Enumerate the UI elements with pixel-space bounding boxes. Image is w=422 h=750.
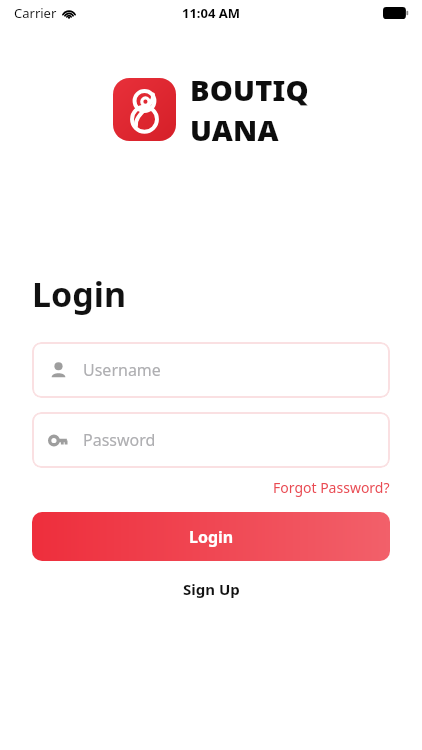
staticText: Login xyxy=(189,526,234,548)
button[interactable]: Forgot Password? xyxy=(271,476,392,499)
staticText: UANA xyxy=(190,110,279,149)
staticText: BOUTIQ xyxy=(190,70,309,109)
staticText: Forgot Password? xyxy=(273,478,390,497)
staticText: Password xyxy=(83,429,156,451)
staticText: Carrier xyxy=(14,4,57,22)
staticText: Login xyxy=(32,271,127,317)
button[interactable]: Username xyxy=(32,342,390,398)
staticText: 11:04 AM xyxy=(182,4,241,22)
button[interactable]: Sign Up xyxy=(173,575,250,603)
button[interactable]: Login xyxy=(32,512,390,561)
staticText: Username xyxy=(83,359,161,381)
staticText: Sign Up xyxy=(183,579,240,599)
button[interactable]: Password xyxy=(32,412,390,468)
